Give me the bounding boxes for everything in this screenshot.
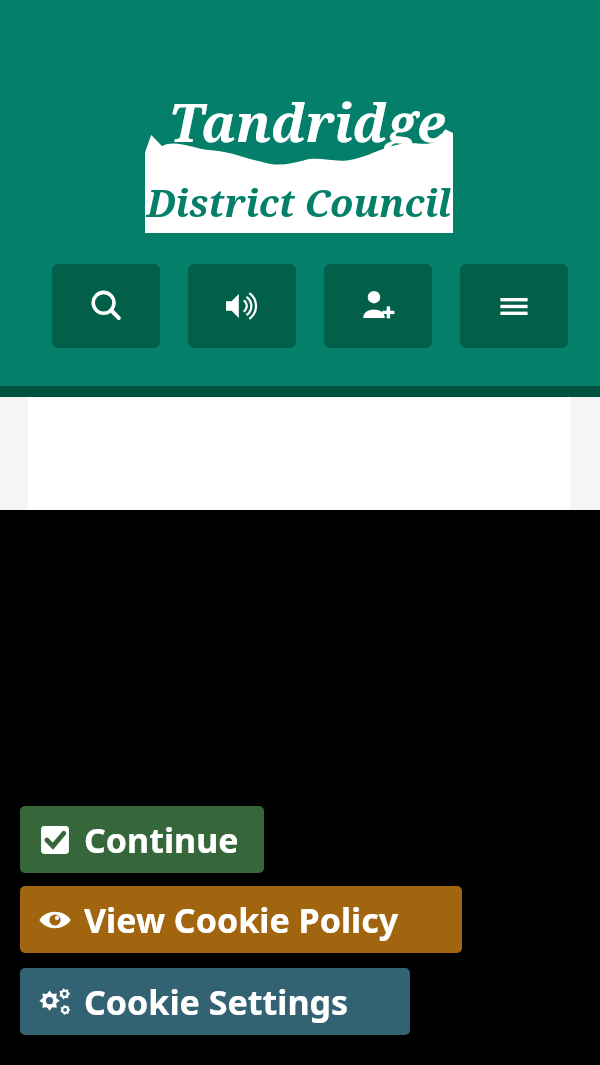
button[interactable]: Register [324, 264, 432, 348]
button[interactable]: Search [52, 264, 160, 348]
button[interactable]: View Cookie Policy [20, 886, 462, 953]
staticText: Continue [84, 817, 239, 863]
staticText: Cookie Settings [84, 979, 349, 1025]
button[interactable]: Listen [188, 264, 296, 348]
staticText: View Cookie Policy [84, 897, 399, 943]
button[interactable]: Menu [460, 264, 568, 348]
staticText: District Council [146, 176, 452, 228]
staticText: Tandridge [169, 86, 446, 157]
button[interactable]: Continue [20, 806, 264, 873]
button[interactable]: Cookie Settings [20, 968, 410, 1035]
